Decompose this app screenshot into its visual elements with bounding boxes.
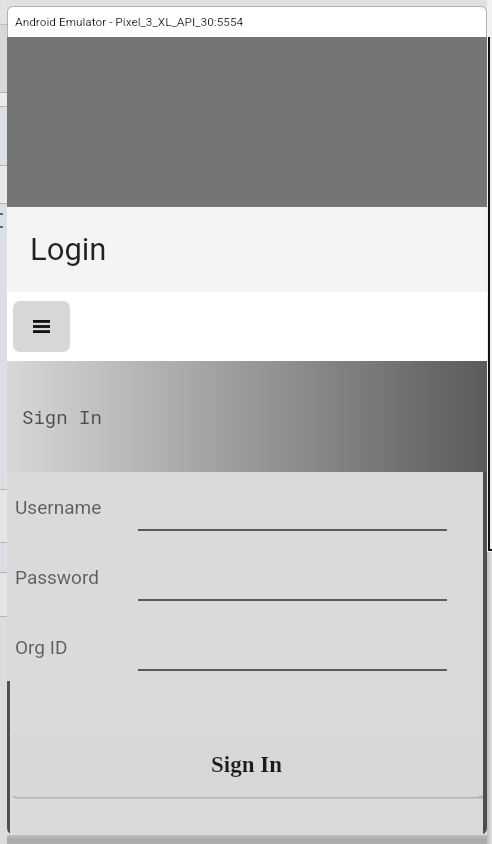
button[interactable]: Sign In xyxy=(12,732,481,797)
staticText: Android Emulator - Pixel_3_XL_API_30:555… xyxy=(15,15,244,29)
staticText: Sign In xyxy=(22,404,102,429)
staticText: Sign In xyxy=(211,752,282,777)
button[interactable]: Open navigation menu xyxy=(13,301,70,352)
staticText: Org ID xyxy=(15,636,68,658)
staticText: Username xyxy=(15,496,102,518)
staticText: Login xyxy=(30,231,107,267)
staticText: Password xyxy=(15,566,99,588)
